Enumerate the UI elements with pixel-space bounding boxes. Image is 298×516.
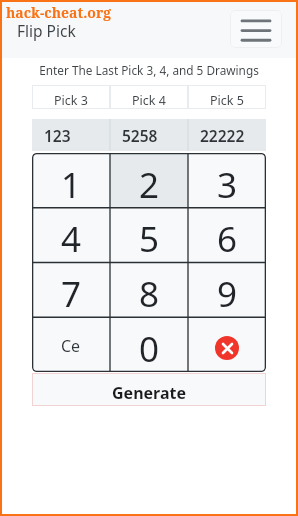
button[interactable]: 7 <box>32 262 110 317</box>
staticText: 123 <box>44 125 71 146</box>
staticText: 8 <box>139 270 160 317</box>
staticText: 1 <box>61 161 82 207</box>
button[interactable]: 0 <box>110 317 188 372</box>
staticText: 4 <box>61 215 82 262</box>
staticText: 5258 <box>122 125 158 146</box>
button[interactable]: Pick 4 <box>110 85 188 109</box>
button[interactable]: 1 <box>32 153 110 207</box>
staticText: Generate <box>112 382 187 404</box>
button[interactable]: 5 <box>110 207 188 262</box>
button[interactable]: 9 <box>188 262 266 317</box>
staticText: Pick 3 <box>54 92 88 109</box>
button[interactable]: 4 <box>32 207 110 262</box>
button[interactable]: Clear <box>188 317 266 372</box>
button[interactable]: 2 <box>110 153 188 207</box>
staticText: 2 <box>139 161 160 207</box>
button[interactable]: 8 <box>110 262 188 317</box>
button[interactable]: Ce <box>32 317 110 372</box>
button[interactable]: 3 <box>188 153 266 207</box>
staticText: Pick 4 <box>132 92 166 109</box>
staticText: 6 <box>217 215 238 262</box>
staticText: 0 <box>139 325 160 372</box>
staticText: Ce <box>61 335 81 357</box>
button[interactable]: Pick 3 <box>32 85 110 109</box>
staticText: Pick 5 <box>210 92 244 109</box>
staticText: 5 <box>139 215 160 262</box>
staticText: hack-cheat.org <box>6 3 112 22</box>
staticText: 3 <box>217 161 238 207</box>
other: Clear <box>215 336 239 360</box>
button[interactable]: Menu <box>230 10 282 48</box>
button[interactable]: 6 <box>188 207 266 262</box>
staticText: Flip Pick <box>17 20 76 41</box>
staticText: 7 <box>61 270 82 317</box>
staticText: Enter The Last Pick 3, 4, and 5 Drawings <box>32 62 266 78</box>
staticText: 22222 <box>200 125 245 146</box>
button[interactable]: Pick 5 <box>188 85 266 109</box>
button[interactable]: Generate <box>32 373 266 406</box>
staticText: 9 <box>217 270 238 317</box>
